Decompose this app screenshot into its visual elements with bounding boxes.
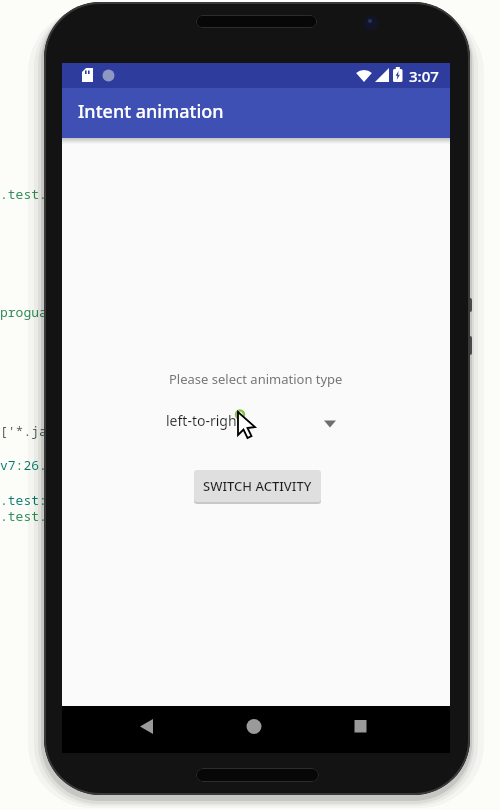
- staticText: SWITCH ACTIVITY: [203, 477, 312, 495]
- button[interactable]: [229, 706, 279, 753]
- button[interactable]: left-to-right: [158, 401, 354, 441]
- staticText: .test.run: [0, 185, 71, 203]
- staticText: left-to-right: [166, 411, 242, 430]
- staticText: v7:26.1.: [0, 456, 63, 474]
- button[interactable]: [334, 706, 384, 753]
- button[interactable]: SWITCH ACTIVITY: [194, 470, 321, 502]
- staticText: .test.es: [0, 507, 63, 525]
- staticText: Intent animation: [78, 99, 224, 124]
- staticText: 3:07: [409, 66, 439, 86]
- staticText: .test:ru: [0, 491, 63, 509]
- button[interactable]: [122, 706, 172, 753]
- staticText: ['*.jar': [0, 422, 63, 440]
- staticText: Please select animation type: [169, 370, 343, 388]
- staticText: proguard: [0, 303, 63, 321]
